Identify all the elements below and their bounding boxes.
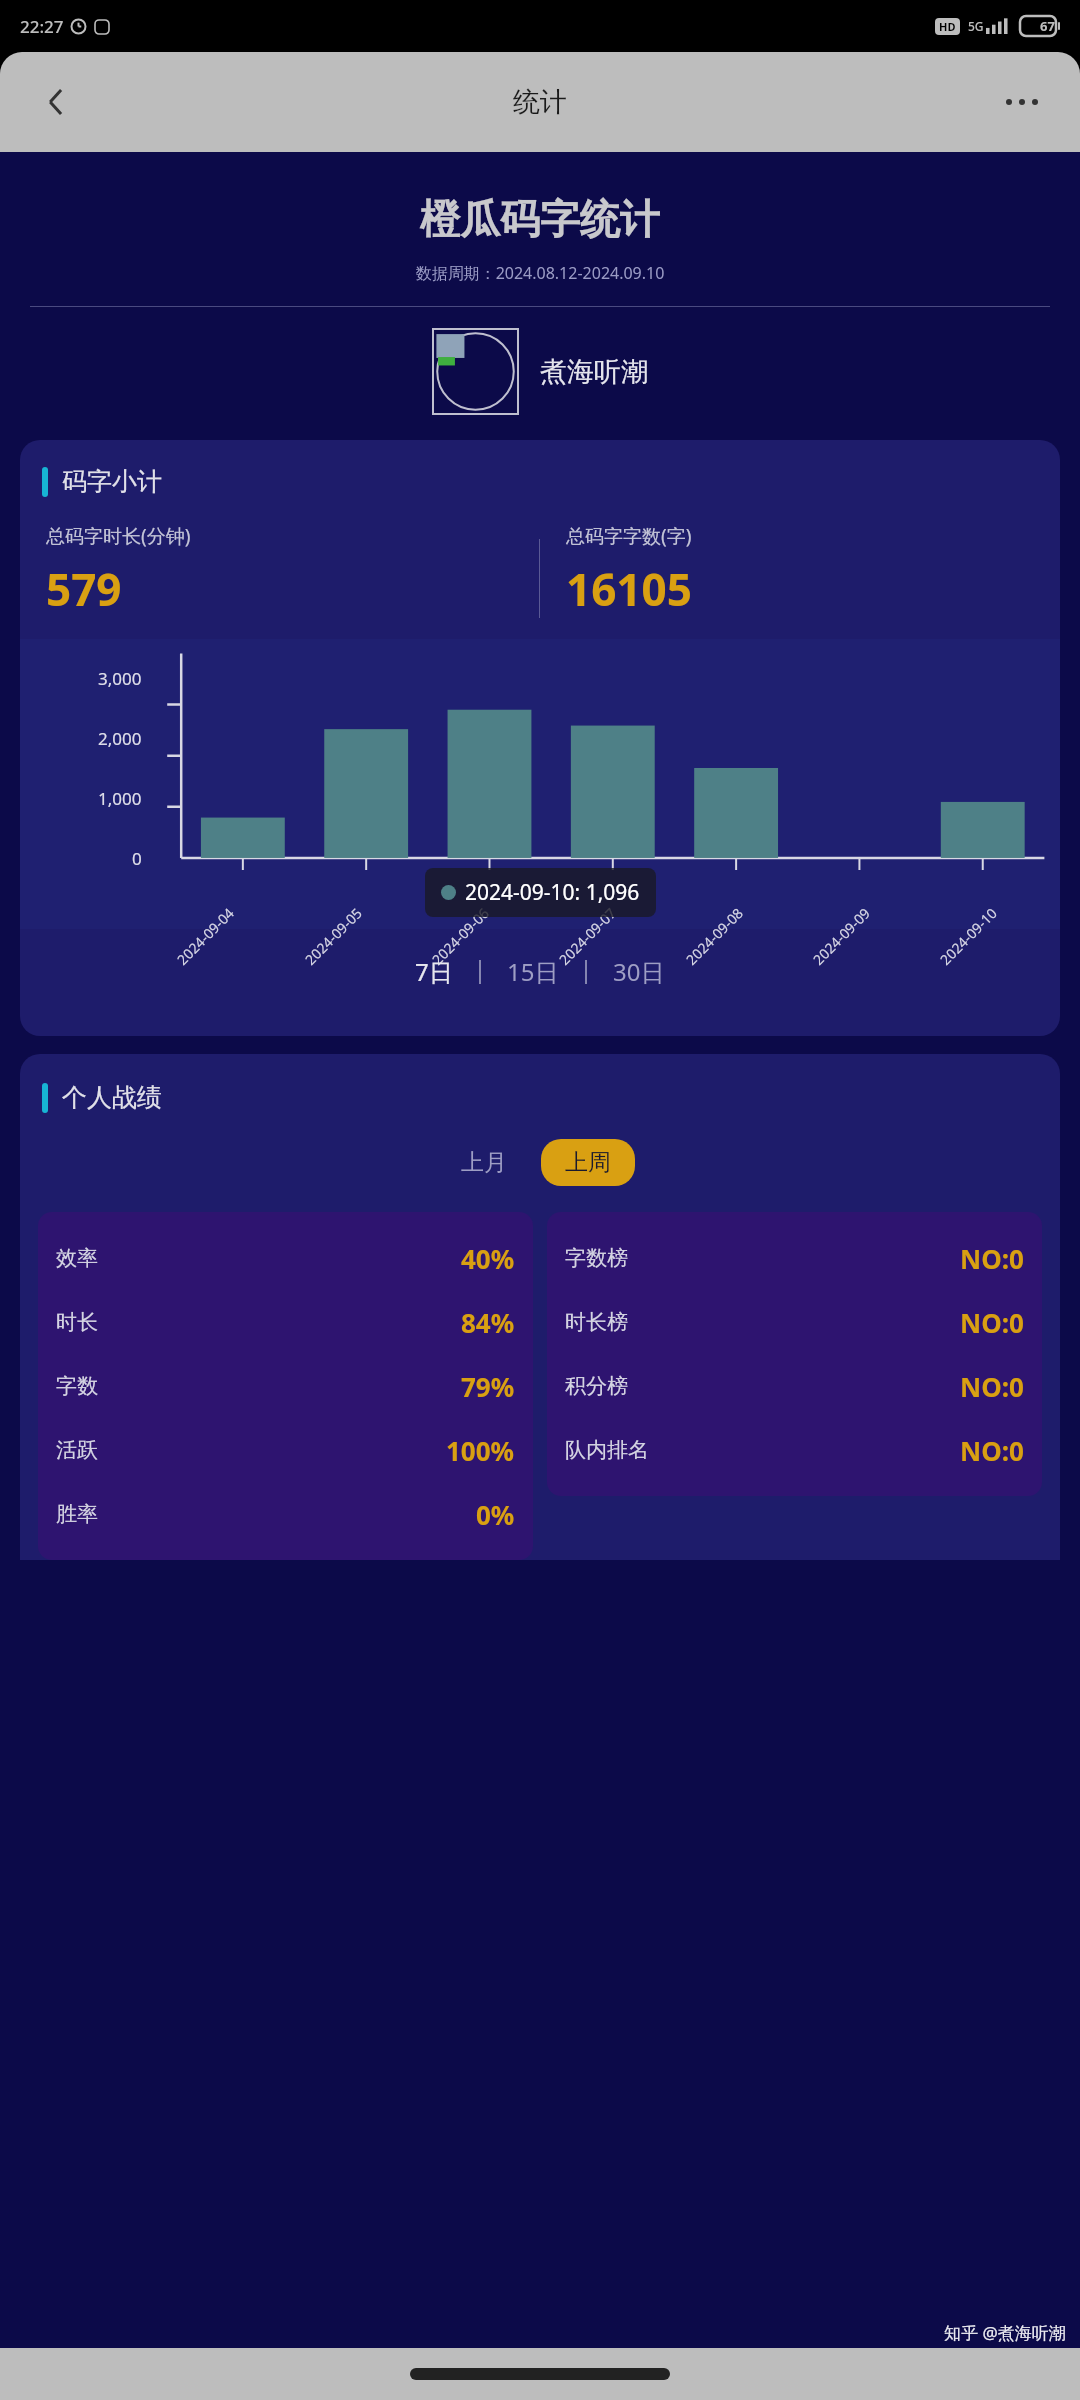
staticText: 总码字字数(字)	[566, 523, 692, 549]
staticText: 个人战绩	[62, 1082, 162, 1113]
button[interactable]: More options	[998, 91, 1046, 113]
staticText: 总码字时长(分钟)	[46, 523, 191, 549]
staticText: HD	[939, 19, 956, 34]
staticText: 效率	[56, 1245, 98, 1271]
staticText: 0%	[476, 1497, 515, 1532]
staticText: 胜率	[56, 1501, 98, 1527]
staticText: 煮海听潮	[540, 355, 648, 389]
staticText: 数据周期：2024.08.12-2024.09.10	[0, 262, 1080, 284]
staticText: 2024-09-10	[936, 903, 1001, 969]
staticText: 84%	[461, 1305, 515, 1340]
staticText: 3,000	[98, 667, 142, 690]
staticText: 67	[1040, 17, 1055, 35]
staticText: 2024-09-08	[682, 903, 747, 969]
staticText: 统计	[513, 85, 567, 119]
staticText: 2024-09-04	[173, 903, 238, 969]
staticText: 字数	[56, 1373, 98, 1399]
button[interactable]: 30日	[587, 949, 691, 994]
staticText: 79%	[461, 1369, 515, 1404]
staticText: 橙瓜码字统计	[0, 194, 1080, 244]
staticText: NO:0	[960, 1433, 1024, 1468]
staticText: NO:0	[960, 1241, 1024, 1276]
button[interactable]: 7日	[389, 949, 479, 994]
staticText: 40%	[461, 1241, 515, 1276]
staticText: 字数榜	[565, 1245, 628, 1271]
staticText: 队内排名	[565, 1437, 649, 1463]
staticText: 知乎 @煮海听潮	[944, 2321, 1066, 2344]
button[interactable]: 15日	[481, 949, 585, 994]
staticText: 579	[46, 559, 122, 619]
staticText: 码字小计	[62, 466, 162, 497]
staticText: 0	[132, 847, 142, 870]
staticText: 时长	[56, 1309, 98, 1335]
staticText: 5G	[968, 18, 984, 34]
button[interactable]: Back	[34, 79, 80, 125]
staticText: NO:0	[960, 1305, 1024, 1340]
staticText: 2024-09-09	[809, 903, 874, 969]
staticText: 2024-09-06	[428, 903, 493, 969]
staticText: 16105	[566, 559, 692, 619]
staticText: 100%	[446, 1433, 515, 1468]
staticText: 2024-09-10: 1,096	[465, 878, 640, 907]
staticText: 上周	[565, 1148, 611, 1177]
staticText: 2024-09-05	[301, 903, 366, 969]
staticText: NO:0	[960, 1369, 1024, 1404]
staticText: 活跃	[56, 1437, 98, 1463]
button[interactable]: 上周	[541, 1139, 635, 1186]
staticText: 时长榜	[565, 1309, 628, 1335]
staticText: 2024-09-07	[555, 903, 620, 969]
button[interactable]: 上月	[445, 1140, 523, 1185]
staticText: 1,000	[98, 787, 142, 810]
staticText: 22:27	[20, 15, 64, 38]
staticText: 2,000	[98, 727, 142, 750]
staticText: 积分榜	[565, 1373, 628, 1399]
